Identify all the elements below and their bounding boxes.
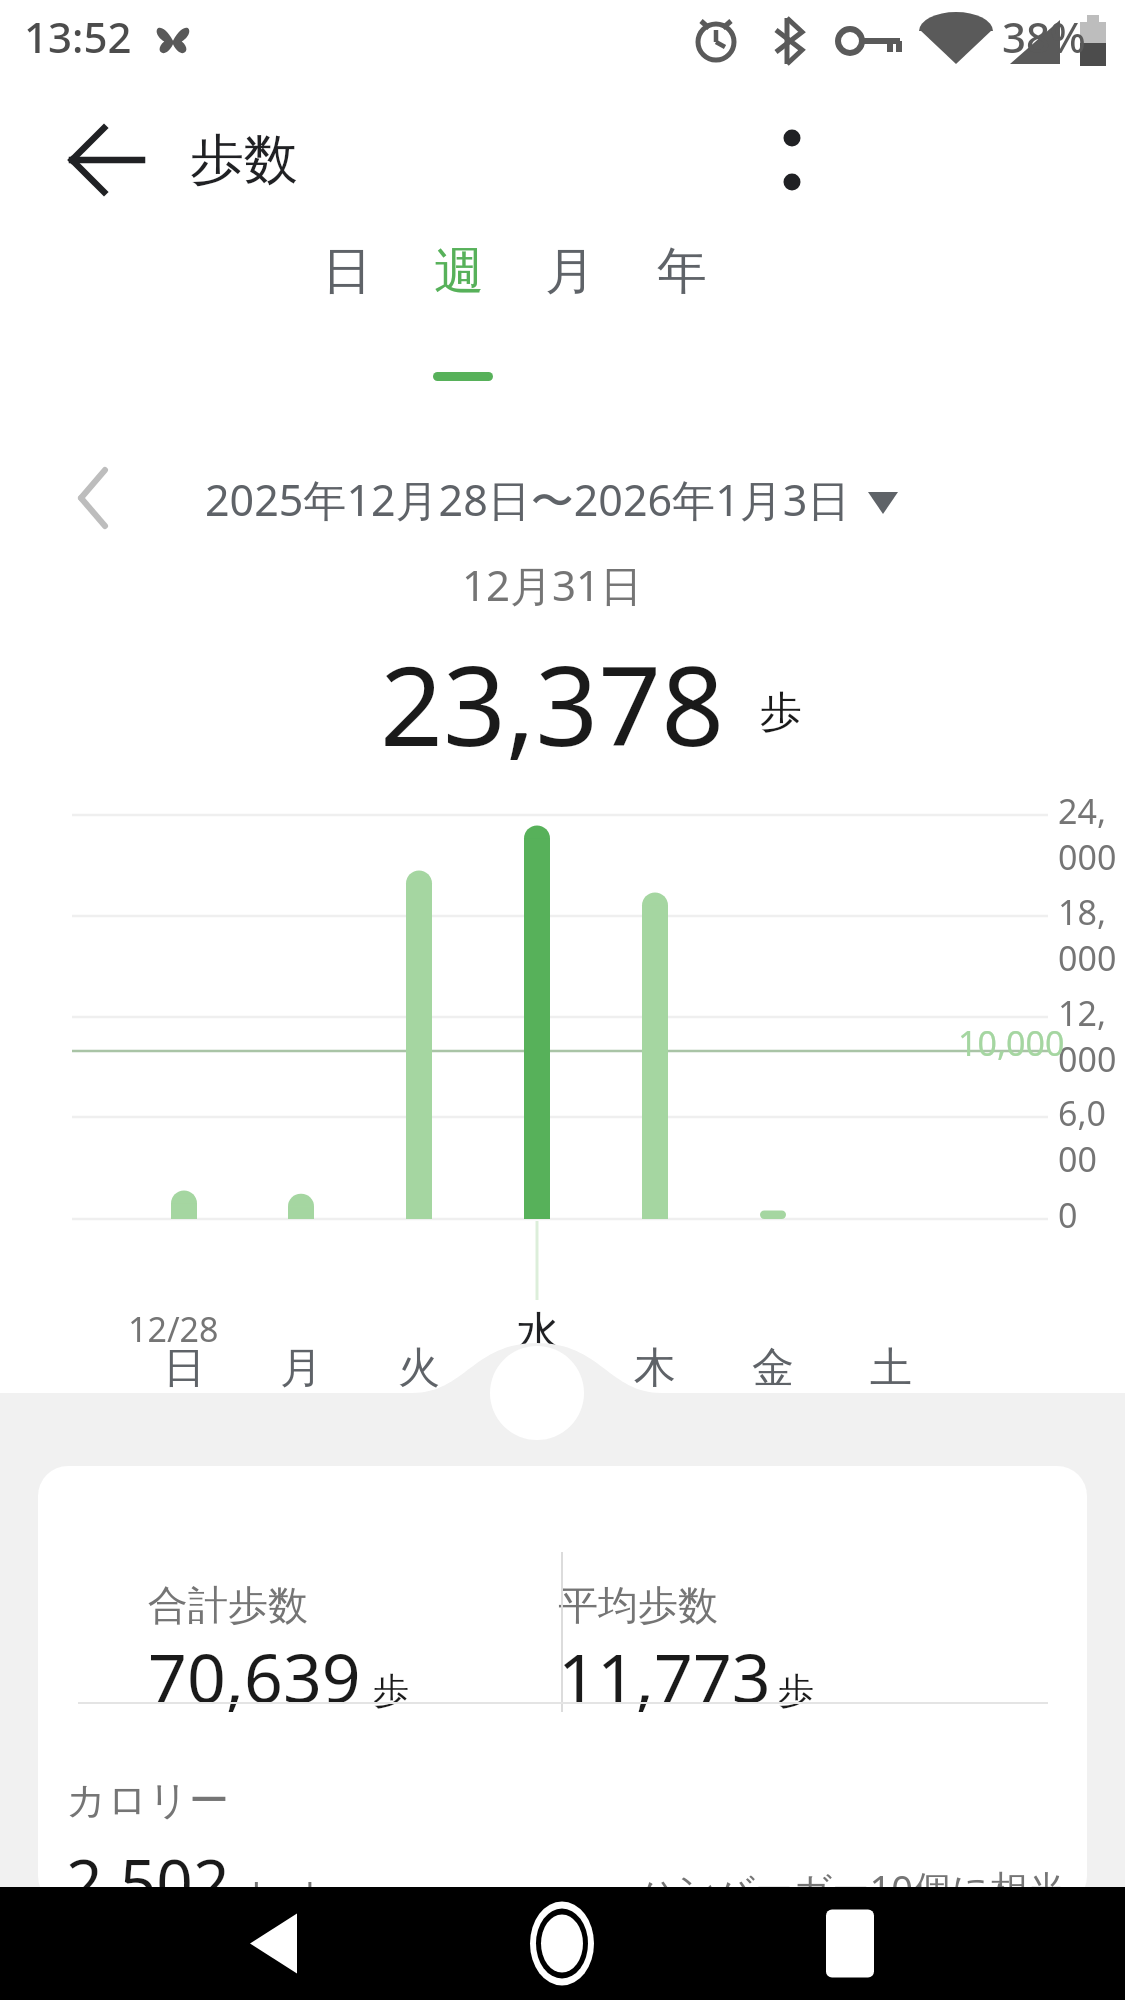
button[interactable]: Back xyxy=(58,112,154,208)
staticText: 歩 xyxy=(760,686,802,739)
staticText: 水 xyxy=(516,1306,560,1361)
button[interactable]: 月 xyxy=(259,1342,343,1412)
staticText: 10,000 xyxy=(958,1020,1065,1066)
button[interactable]: 2025年12月28日〜2026年1月3日 xyxy=(205,466,905,536)
staticText: 金 xyxy=(752,1342,794,1395)
staticText: 日 xyxy=(163,1342,205,1395)
button[interactable]: 日 xyxy=(142,1342,226,1412)
staticText: 0 xyxy=(1058,1192,1120,1238)
button[interactable]: 日 xyxy=(294,222,406,332)
staticText: 2025年12月28日〜2026年1月3日 xyxy=(205,470,851,529)
staticText: 土 xyxy=(870,1342,912,1395)
staticText: 38% xyxy=(1002,8,1086,65)
staticText: 合計歩数 xyxy=(148,1580,308,1630)
staticText: ハンバーガー10個に相当 xyxy=(638,1862,1066,1914)
staticText: 歩 xyxy=(373,1668,409,1713)
staticText: 13:52 xyxy=(24,8,132,65)
staticText: カロリー xyxy=(66,1775,229,1825)
button[interactable]: Back xyxy=(215,1887,335,2000)
staticText: 2,502 xyxy=(66,1838,230,1925)
button[interactable]: Recent apps xyxy=(790,1887,910,2000)
button[interactable]: 週 xyxy=(406,222,518,332)
button[interactable]: 月 xyxy=(517,222,629,332)
staticText: 70,639 xyxy=(148,1630,361,1723)
staticText: 月 xyxy=(545,240,595,303)
staticText: 歩数 xyxy=(190,126,298,194)
staticText: 木 xyxy=(634,1342,676,1395)
button[interactable]: 金 xyxy=(731,1342,815,1412)
staticText: 火 xyxy=(398,1342,440,1395)
staticText: 24,000 xyxy=(1058,788,1120,880)
staticText: 11,773 xyxy=(558,1630,771,1723)
staticText: 週 xyxy=(434,240,484,303)
staticText: 年 xyxy=(657,240,707,303)
staticText: 12/28 xyxy=(128,1306,219,1352)
staticText: 23,378 xyxy=(380,628,725,778)
staticText: 12,000 xyxy=(1058,990,1120,1082)
staticText: kcal xyxy=(252,1872,315,1918)
staticText: 日 xyxy=(322,240,372,303)
staticText: 18,000 xyxy=(1058,889,1120,981)
staticText: 12月31日 xyxy=(462,556,643,613)
staticText: 6,000 xyxy=(1058,1090,1120,1182)
button[interactable]: 木 xyxy=(613,1342,697,1412)
staticText: 月 xyxy=(280,1342,322,1395)
staticText: 平均歩数 xyxy=(558,1580,718,1630)
button[interactable]: Previous week xyxy=(48,452,140,544)
button[interactable]: More options xyxy=(744,112,840,208)
button[interactable] xyxy=(38,1466,1087,1906)
button[interactable]: 年 xyxy=(629,222,741,332)
staticText: 歩 xyxy=(778,1668,814,1713)
button[interactable]: Home xyxy=(502,1887,622,2000)
button[interactable]: 土 xyxy=(849,1342,933,1412)
button[interactable]: 火 xyxy=(377,1342,461,1412)
